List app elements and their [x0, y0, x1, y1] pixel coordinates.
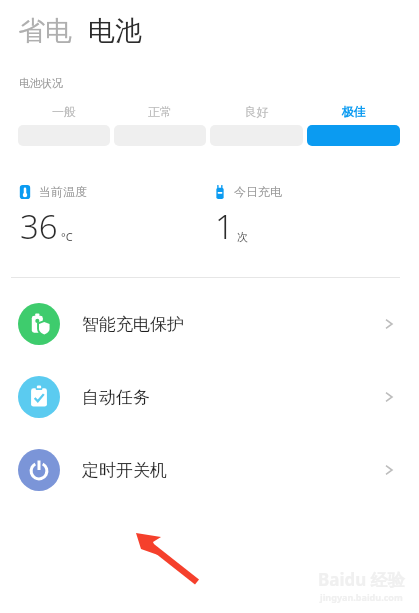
button[interactable]: [307, 125, 400, 146]
staticText: Baidu 经验: [318, 568, 405, 591]
staticText: 正常: [114, 104, 206, 119]
staticText: 1: [215, 204, 234, 249]
staticText: 自动任务: [82, 387, 150, 408]
button[interactable]: 电池: [88, 14, 142, 48]
staticText: 极佳: [307, 104, 400, 119]
staticText: 一般: [18, 104, 110, 119]
staticText: 电池状况: [19, 76, 63, 90]
staticText: 36: [20, 204, 58, 249]
button[interactable]: 自动任务: [0, 375, 419, 419]
staticText: 次: [237, 230, 248, 244]
button[interactable]: 省电: [18, 14, 72, 48]
staticText: 良好: [210, 104, 303, 119]
other: 打开 自动任务: [383, 391, 395, 403]
staticText: 定时开关机: [82, 460, 167, 481]
other: 打开 智能充电保护: [383, 318, 395, 330]
staticText: 当前温度: [39, 184, 87, 199]
other: 打开 定时开关机: [383, 464, 395, 476]
button[interactable]: 定时开关机: [0, 448, 419, 492]
staticText: jingyan.baidu.com: [320, 591, 403, 603]
staticText: 今日充电: [234, 184, 282, 199]
staticText: 智能充电保护: [82, 314, 184, 335]
staticText: °C: [61, 229, 73, 244]
button[interactable]: 智能充电保护: [0, 302, 419, 346]
